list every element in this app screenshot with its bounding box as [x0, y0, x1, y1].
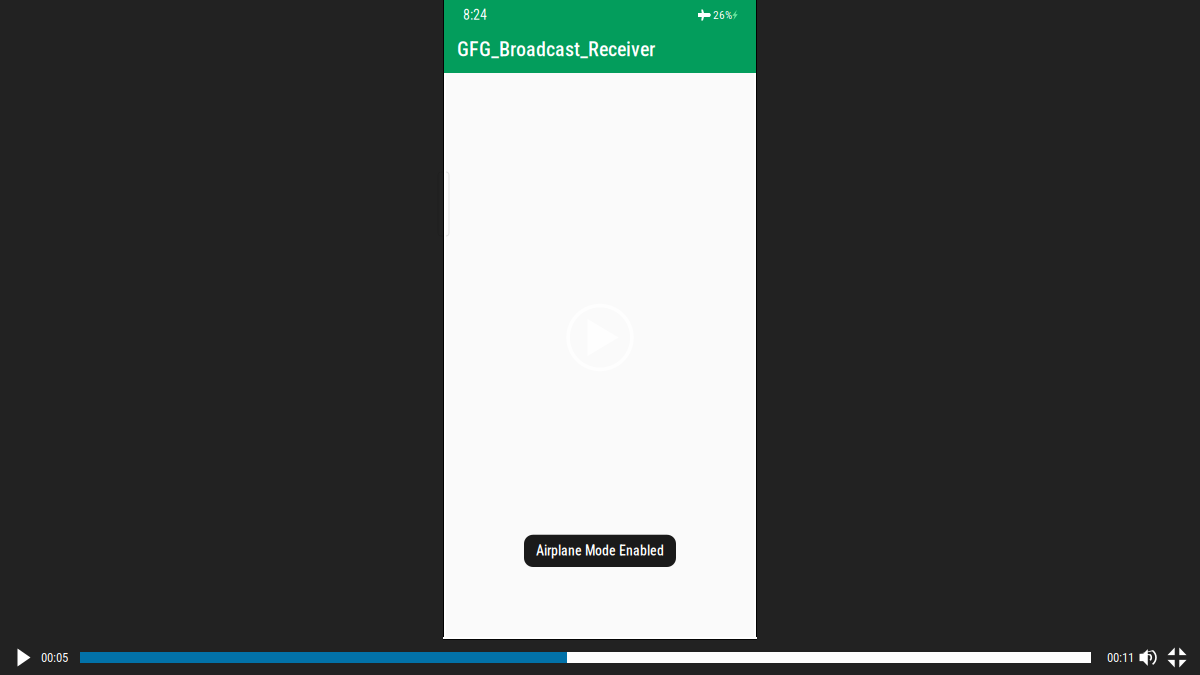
staticText: GFG_Broadcast_Receiver	[457, 38, 655, 61]
staticText: 00:11	[1107, 650, 1134, 665]
staticText: 8:24	[463, 7, 487, 23]
button[interactable]: Seek	[80, 645, 1091, 670]
staticText: Airplane Mode Enabled	[536, 543, 664, 559]
button[interactable]: Exit full screen	[1163, 640, 1191, 675]
staticText: 26%	[713, 8, 732, 22]
staticText: 00:05	[41, 650, 68, 665]
button[interactable]: Play	[7, 640, 41, 675]
button[interactable]: Mute	[1134, 640, 1163, 675]
